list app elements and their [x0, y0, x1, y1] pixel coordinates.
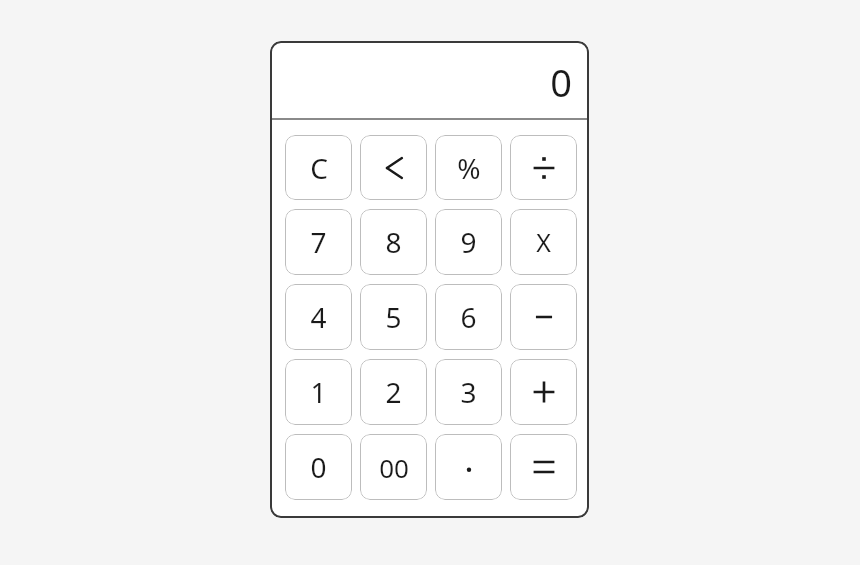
button[interactable]: Divide	[510, 135, 577, 200]
staticText: 4	[310, 298, 327, 336]
staticText: 6	[460, 298, 477, 336]
button[interactable]: Plus	[510, 359, 577, 425]
button[interactable]: 2	[360, 359, 427, 425]
staticText: X	[536, 225, 551, 259]
staticText: %	[457, 149, 481, 187]
button[interactable]: 8	[360, 209, 427, 275]
button[interactable]: 9	[435, 209, 502, 275]
button[interactable]: C	[285, 135, 352, 200]
staticText: 7	[310, 223, 327, 261]
button[interactable]: Minus	[510, 284, 577, 350]
button[interactable]: Equals	[510, 434, 577, 500]
staticText: 3	[460, 373, 477, 411]
staticText: 1	[310, 373, 327, 411]
staticText: 8	[385, 223, 402, 261]
button[interactable]: X	[510, 209, 577, 275]
button[interactable]: 1	[285, 359, 352, 425]
staticText: 00	[379, 450, 409, 485]
staticText: 5	[385, 298, 402, 336]
button[interactable]: Decimal point	[435, 434, 502, 500]
staticText: 9	[460, 223, 477, 261]
staticText: C	[310, 149, 328, 187]
button[interactable]: 6	[435, 284, 502, 350]
button[interactable]: 0	[270, 41, 589, 118]
button[interactable]: 00	[360, 434, 427, 500]
button[interactable]: 3	[435, 359, 502, 425]
button[interactable]: 7	[285, 209, 352, 275]
button[interactable]: 0	[285, 434, 352, 500]
staticText: 0	[310, 448, 327, 486]
staticText: 0	[550, 56, 572, 108]
staticText: 2	[385, 373, 402, 411]
button[interactable]: 4	[285, 284, 352, 350]
button[interactable]: Backspace	[360, 135, 427, 200]
button[interactable]: %	[435, 135, 502, 200]
button[interactable]: 5	[360, 284, 427, 350]
